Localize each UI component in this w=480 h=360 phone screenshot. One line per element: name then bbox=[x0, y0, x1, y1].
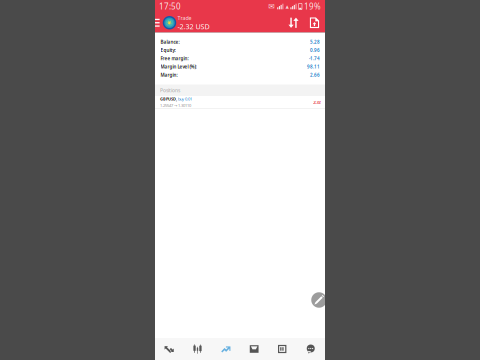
staticText: Trade bbox=[177, 14, 191, 21]
button[interactable]: New order bbox=[304, 13, 325, 32]
staticText: ✉ bbox=[268, 2, 275, 11]
staticText: 1.25547 → 1.30110 bbox=[160, 103, 191, 108]
staticText: Positions bbox=[160, 87, 180, 93]
staticText: -1.74 bbox=[309, 56, 320, 61]
staticText: Free margin: bbox=[160, 56, 188, 61]
button[interactable]: New order bbox=[311, 292, 327, 308]
button[interactable]: History bbox=[240, 338, 268, 360]
staticText: 19% bbox=[304, 1, 321, 12]
staticText: -2.32 USD bbox=[177, 22, 209, 31]
staticText: Equity: bbox=[160, 47, 175, 53]
staticText: buy 0.01 bbox=[178, 96, 192, 102]
staticText: 98.11 bbox=[307, 64, 320, 70]
button[interactable]: Menu bbox=[155, 13, 161, 32]
staticText: 17:50 bbox=[159, 1, 181, 12]
button[interactable]: Charts bbox=[183, 338, 212, 360]
button[interactable]: Account bbox=[161, 13, 177, 32]
button[interactable]: News bbox=[268, 338, 297, 360]
staticText: ▴ bbox=[285, 3, 288, 10]
button[interactable]: Quotes bbox=[155, 338, 183, 360]
button[interactable]: Messages bbox=[297, 338, 325, 360]
staticText: -2.32 bbox=[312, 100, 320, 105]
staticText: 5.28 bbox=[310, 39, 320, 45]
button[interactable]: Trade bbox=[212, 338, 240, 360]
staticText: GBPUSD, bbox=[160, 96, 177, 102]
staticText: Balance: bbox=[160, 39, 179, 45]
staticText: Margin: bbox=[160, 72, 177, 78]
staticText: 2.66 bbox=[310, 72, 320, 78]
button[interactable]: GBPUSD, bbox=[155, 96, 325, 108]
button[interactable]: Sort bbox=[283, 13, 304, 32]
staticText: Margin Level (%): bbox=[160, 64, 196, 70]
staticText: 0.96 bbox=[310, 47, 320, 53]
